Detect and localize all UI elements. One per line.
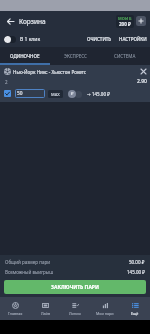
button[interactable]: ОДИНОЧНОЕ [0, 47, 50, 65]
button[interactable]: Лайв [30, 297, 60, 320]
button[interactable]: МОЙ Б [116, 15, 134, 28]
staticText: ЭКСПРЕСС [64, 53, 87, 59]
staticText: 50.00 ₽ [129, 259, 145, 265]
button[interactable]: Мои пари [90, 297, 120, 320]
staticText: Линия [69, 311, 81, 316]
staticText: Возможный выигрыш [5, 269, 54, 275]
staticText: MAX [51, 92, 60, 97]
staticText: Корзина [19, 17, 46, 26]
button[interactable]: Выбрано [4, 90, 11, 97]
button[interactable]: Пополнить [136, 16, 146, 26]
button[interactable]: 50 [15, 89, 45, 98]
staticText: В 1 клик [20, 36, 41, 43]
button[interactable]: ЭКСПРЕСС [50, 47, 100, 65]
staticText: МОЙ Б [118, 16, 132, 21]
staticText: 200 ₽ [119, 21, 131, 27]
button[interactable]: Ещё [120, 297, 150, 320]
staticText: 50 [17, 90, 23, 97]
button[interactable]: Линия [60, 297, 90, 320]
button[interactable]: Валюта [68, 90, 76, 98]
staticText: Главная [8, 311, 23, 316]
button[interactable]: ОЧИСТИТЬ [85, 33, 114, 45]
button[interactable]: СИСТЕМА [100, 47, 150, 65]
staticText: ₽ [71, 91, 74, 97]
staticText: Общий размер пари [5, 259, 50, 265]
button[interactable]: НАСТРОЙКИ [117, 33, 149, 45]
staticText: ОДИНОЧНОЕ [10, 53, 40, 59]
button[interactable]: ЗАКЛЮЧИТЬ ПАРИ [4, 280, 146, 294]
staticText: Нью-Йорк Никс - Хьюстон Рокетс [13, 69, 87, 75]
staticText: ЗАКЛЮЧИТЬ ПАРИ [51, 284, 99, 291]
staticText: 145.00 ₽ [127, 269, 145, 275]
staticText: Мои пари [96, 311, 114, 316]
staticText: Лайв [41, 311, 50, 316]
staticText: СИСТЕМА [114, 53, 136, 59]
staticText: → 145.00 ₽ [87, 91, 110, 97]
button[interactable]: MAX [48, 90, 63, 98]
staticText: 2.90 [137, 78, 147, 85]
button[interactable]: Главная [0, 297, 30, 320]
staticText: Ещё [131, 311, 139, 316]
button[interactable]: Удалить [138, 66, 149, 77]
staticText: ОЧИСТИТЬ [87, 36, 112, 42]
button[interactable]: В 1 клик [4, 36, 41, 43]
staticText: 2 [5, 79, 8, 85]
button[interactable]: Back [3, 14, 17, 28]
staticText: НАСТРОЙКИ [119, 36, 147, 42]
